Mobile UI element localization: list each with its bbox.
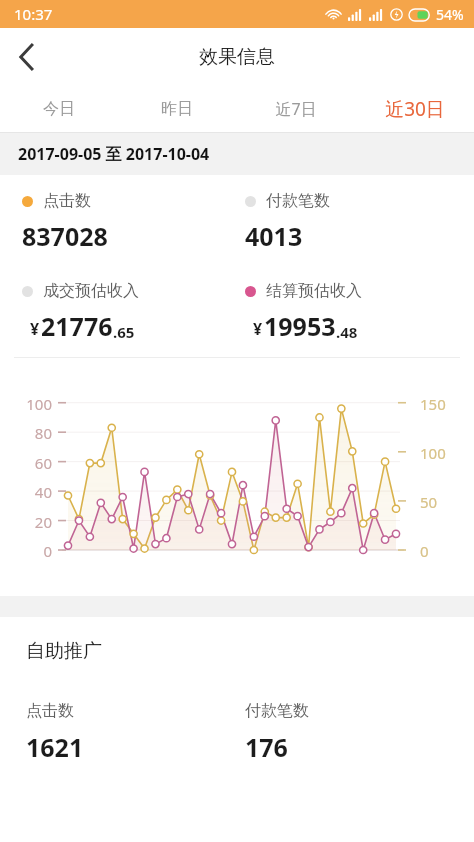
staticText: 21776 <box>41 309 113 343</box>
staticText: 2017-09-05 至 2017-10-04 <box>18 143 210 165</box>
staticText: 点击数 <box>43 191 91 211</box>
staticText: 自助推广 <box>26 639 102 663</box>
staticText: 80 <box>6 423 52 443</box>
staticText: 昨日 <box>161 99 193 119</box>
staticText: 150 <box>420 394 466 414</box>
button[interactable]: 付款笔数 <box>245 191 474 253</box>
staticText: 50 <box>420 492 466 512</box>
staticText: 100 <box>6 394 52 414</box>
staticText: 结算预估收入 <box>266 281 362 301</box>
staticText: .65 <box>113 322 135 342</box>
staticText: 效果信息 <box>199 45 275 69</box>
staticText: 0 <box>420 541 466 561</box>
staticText: 176 <box>245 730 288 764</box>
button[interactable]: 结算预估收入 <box>245 281 474 343</box>
staticText: 0 <box>6 541 52 561</box>
staticText: 837028 <box>22 219 108 253</box>
staticText: 付款笔数 <box>266 191 330 211</box>
button[interactable]: 点击数 <box>26 701 237 764</box>
staticText: 40 <box>6 482 52 502</box>
staticText: 60 <box>6 453 52 473</box>
staticText: 4013 <box>245 219 303 253</box>
staticText: 成交预估收入 <box>43 281 139 301</box>
staticText: ¥ <box>30 318 40 340</box>
button[interactable]: 付款笔数 <box>245 701 474 764</box>
staticText: 今日 <box>43 99 75 119</box>
button[interactable]: 近30日 <box>355 86 474 132</box>
staticText: 20 <box>6 512 52 532</box>
button[interactable]: 昨日 <box>118 86 236 132</box>
button[interactable]: 近7日 <box>236 86 355 132</box>
staticText: 付款笔数 <box>245 701 309 721</box>
staticText: 100 <box>420 443 466 463</box>
staticText: .48 <box>336 322 358 342</box>
button[interactable]: Back <box>0 31 52 83</box>
staticText: ¥ <box>253 318 263 340</box>
button[interactable]: 点击数 <box>22 191 237 253</box>
button[interactable]: 成交预估收入 <box>22 281 237 343</box>
staticText: 19953 <box>264 309 336 343</box>
staticText: 1621 <box>26 730 84 764</box>
staticText: 54% <box>436 5 464 24</box>
staticText: 近30日 <box>385 96 445 122</box>
staticText: 点击数 <box>26 701 74 721</box>
staticText: 近7日 <box>275 98 317 120</box>
button[interactable]: 今日 <box>0 86 118 132</box>
staticText: 10:37 <box>14 4 53 24</box>
